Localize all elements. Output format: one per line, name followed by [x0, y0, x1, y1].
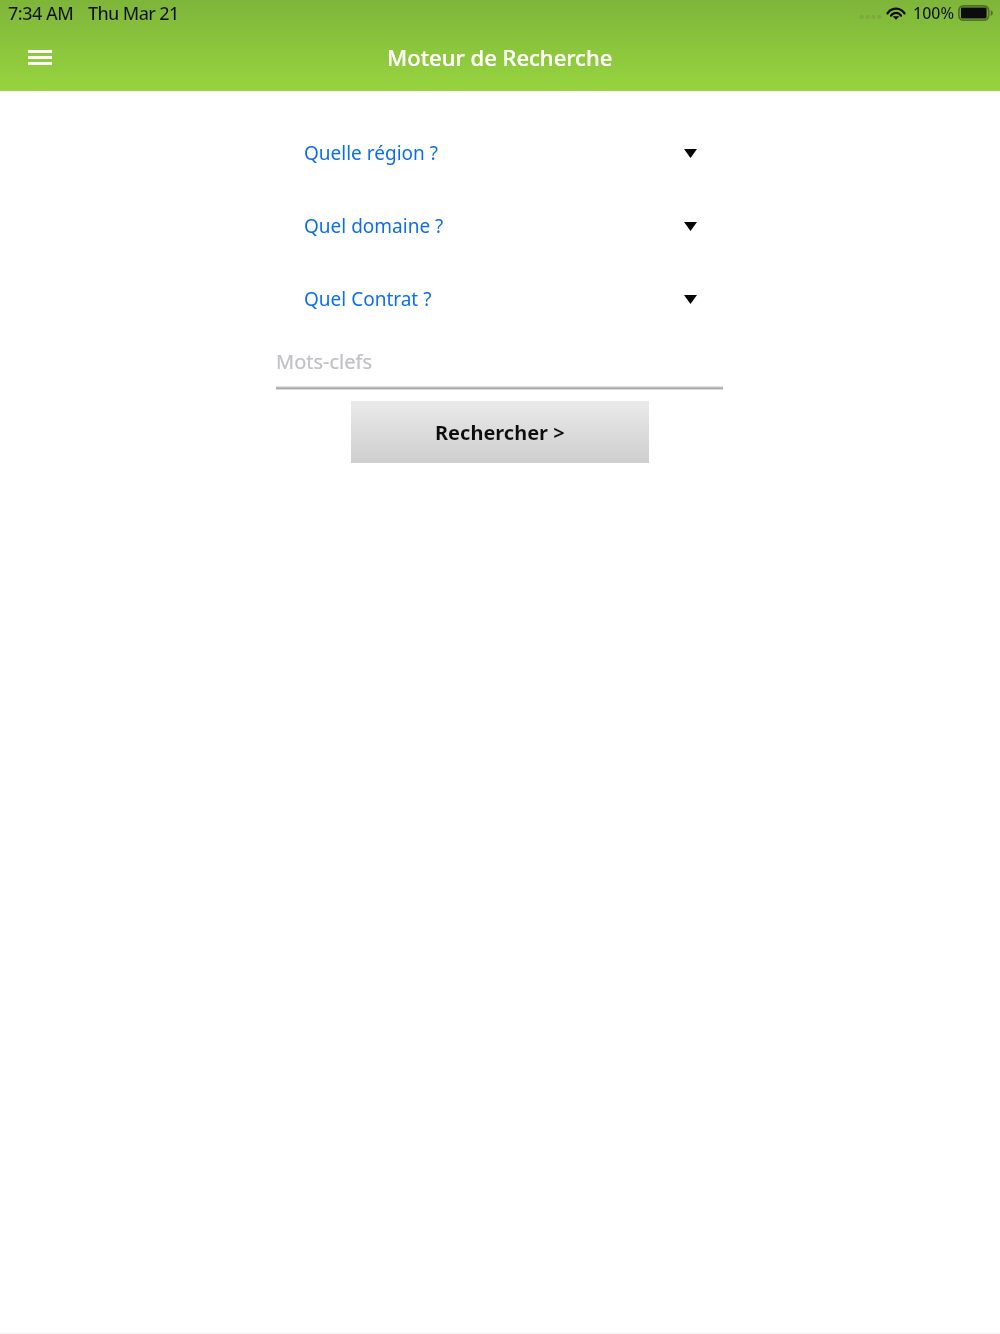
staticText: Thu Mar 21: [88, 1, 179, 26]
staticText: 7:34 AM: [8, 1, 74, 26]
button[interactable]: Quel Contrat ?: [304, 262, 697, 335]
button[interactable]: Quel domaine ?: [304, 189, 697, 262]
staticText: Rechercher >: [435, 419, 565, 446]
button[interactable]: Mots-clefs: [276, 348, 723, 391]
button[interactable]: Open navigation menu: [16, 33, 64, 81]
staticText: Mots-clefs: [276, 348, 372, 375]
staticText: Quel domaine ?: [304, 213, 444, 239]
staticText: Moteur de Recherche: [387, 42, 613, 72]
button[interactable]: Quelle région ?: [304, 116, 697, 189]
staticText: Quelle région ?: [304, 140, 438, 166]
staticText: Quel Contrat ?: [304, 286, 432, 312]
staticText: 100%: [913, 2, 955, 24]
button[interactable]: Rechercher >: [351, 401, 649, 463]
